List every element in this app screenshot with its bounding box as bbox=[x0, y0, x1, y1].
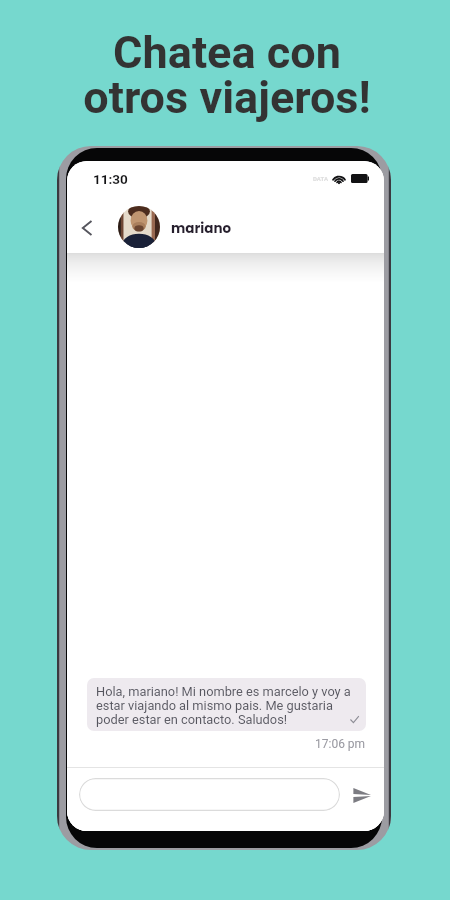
button[interactable]: mariano bbox=[118, 204, 232, 246]
staticText: 11:30 bbox=[93, 171, 128, 187]
button[interactable]: Send bbox=[342, 775, 382, 815]
staticText: DATA bbox=[313, 175, 328, 182]
button[interactable]: Hola, mariano! Mi nombre es marcelo y vo… bbox=[87, 678, 366, 731]
button[interactable] bbox=[79, 778, 340, 811]
staticText: 17:06 pm bbox=[315, 737, 366, 751]
button[interactable]: Back bbox=[69, 210, 105, 246]
staticText: Chatea con otros viajeros! bbox=[2, 26, 450, 124]
staticText: Hola, mariano! Mi nombre es marcelo y vo… bbox=[96, 684, 351, 727]
staticText: mariano bbox=[171, 219, 232, 238]
